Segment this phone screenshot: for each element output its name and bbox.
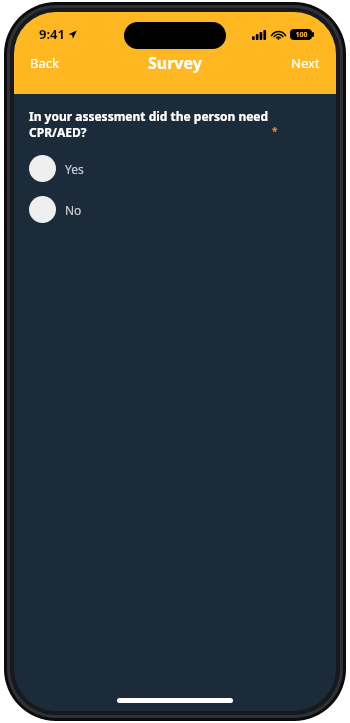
button[interactable]: No [29, 194, 82, 225]
button[interactable]: Next [283, 48, 328, 78]
staticText: 9:41 [39, 25, 65, 43]
button[interactable]: Back [22, 48, 67, 78]
button[interactable]: Yes [29, 153, 84, 184]
staticText: Next [291, 54, 320, 72]
staticText: In your assessment did the person need C… [29, 108, 269, 140]
staticText: No [65, 202, 82, 218]
staticText: Back [30, 54, 59, 72]
staticText: 100 [295, 30, 308, 40]
staticText: Survey [148, 52, 202, 74]
staticText: Yes [65, 161, 84, 177]
staticText: * [272, 124, 278, 138]
